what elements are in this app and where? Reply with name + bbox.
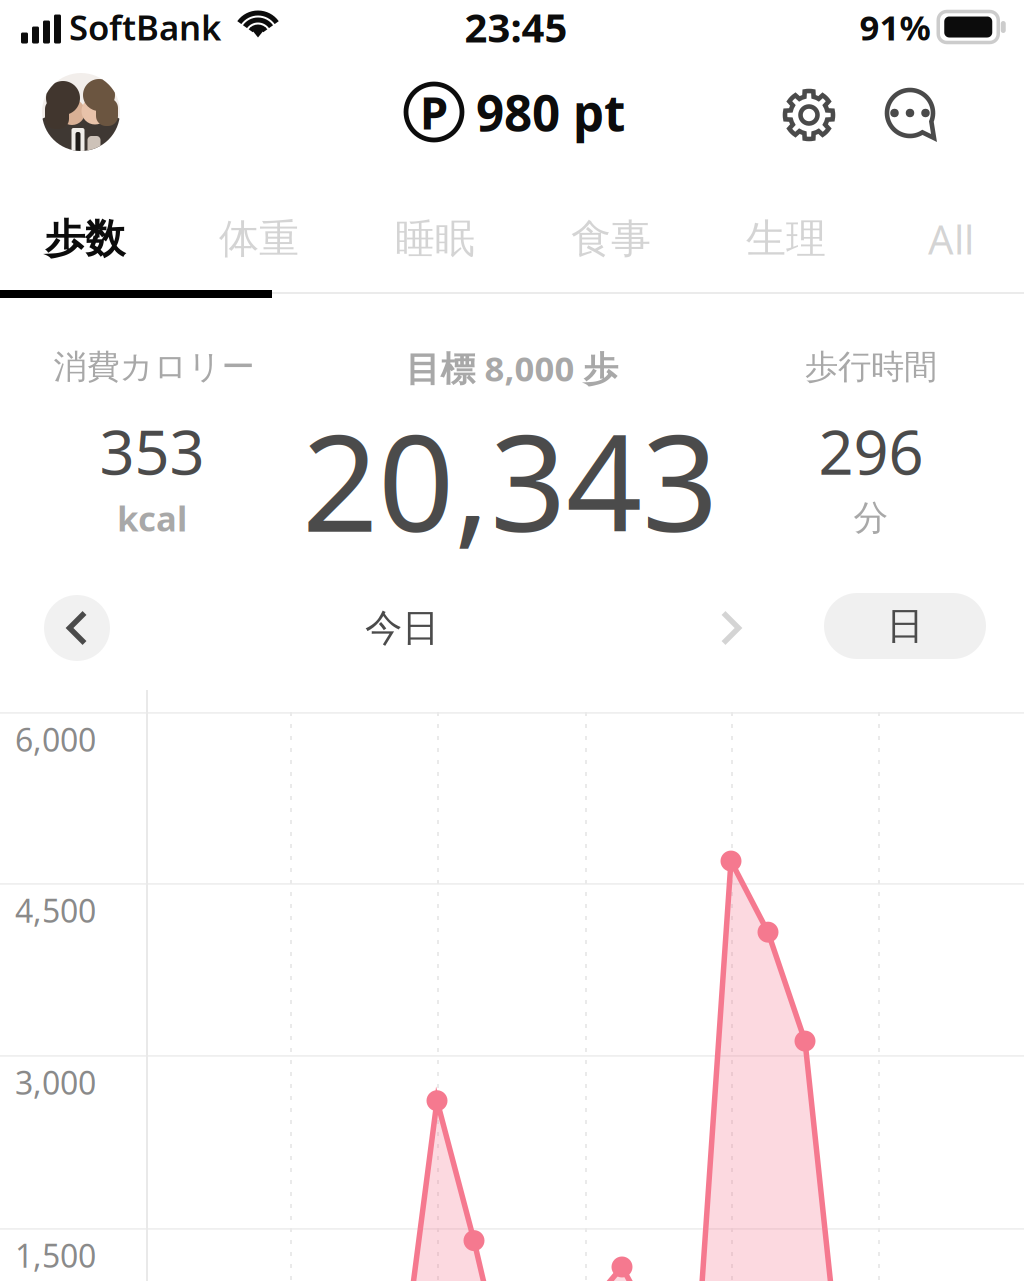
button[interactable]: 生理 [702, 191, 870, 287]
staticText: 296 [818, 410, 923, 492]
button[interactable]: P [405, 79, 625, 145]
button[interactable]: Settings [782, 88, 836, 142]
staticText: 歩行時間 [805, 346, 937, 387]
staticText: 23:45 [464, 0, 567, 53]
staticText: 歩数 [45, 214, 125, 263]
staticText: 4,500 [15, 889, 96, 931]
staticText: 消費カロリー [53, 346, 254, 387]
staticText: 目標 8,000 歩 [405, 345, 618, 391]
button[interactable]: All [867, 191, 1024, 287]
button[interactable]: Messages [884, 88, 938, 142]
button[interactable]: 体重 [175, 191, 343, 287]
staticText: 体重 [219, 214, 299, 263]
button[interactable]: 日 [824, 593, 986, 659]
button[interactable]: Next day [695, 592, 767, 664]
staticText: 今日 [365, 605, 439, 651]
staticText: 生理 [746, 214, 826, 263]
staticText: 20,343 [302, 391, 718, 569]
staticText: 91% [859, 4, 930, 50]
staticText: 980 pt [476, 79, 625, 145]
staticText: P [420, 82, 448, 142]
button[interactable]: 歩数 [1, 191, 169, 287]
button[interactable]: 食事 [527, 191, 695, 287]
staticText: 食事 [571, 214, 651, 263]
button[interactable]: Previous day [44, 595, 110, 661]
button[interactable]: Profile [42, 73, 120, 151]
staticText: 1,500 [15, 1234, 96, 1276]
staticText: 6,000 [15, 718, 96, 760]
staticText: 睡眠 [395, 214, 475, 263]
staticText: All [928, 212, 974, 265]
staticText: 分 [853, 497, 888, 539]
button[interactable]: 睡眠 [351, 191, 519, 287]
staticText: 日 [886, 603, 923, 649]
button[interactable]: 今日 [322, 592, 482, 664]
staticText: kcal [117, 495, 187, 541]
staticText: 353 [99, 410, 204, 492]
staticText: 3,000 [15, 1061, 96, 1103]
staticText: SoftBank [69, 4, 221, 50]
